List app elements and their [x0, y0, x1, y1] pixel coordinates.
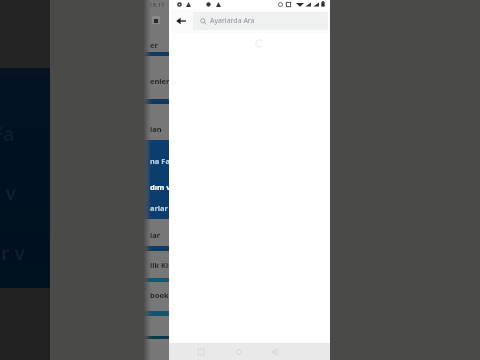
staticText: lar: [150, 230, 161, 240]
staticText: Ayarlarda Ara: [210, 16, 255, 26]
staticText: er: [150, 40, 158, 50]
staticText: dım v: [150, 182, 171, 192]
button[interactable]: Ayarlarda Ara: [193, 12, 328, 30]
button[interactable]: Back: [267, 343, 281, 360]
staticText: arlar v: [0, 240, 26, 266]
staticText: lik Kis: [150, 260, 173, 270]
staticText: na Fa: [0, 121, 15, 147]
staticText: lan: [150, 124, 162, 134]
staticText: 15:11: [149, 1, 165, 9]
staticText: arlar: [150, 203, 168, 213]
staticText: dım v: [0, 180, 17, 206]
staticText: na Fa: [150, 156, 170, 166]
button[interactable]: Home: [232, 343, 246, 360]
button[interactable]: Recents: [194, 343, 208, 360]
button[interactable]: Back: [169, 9, 193, 33]
staticText: book: [150, 290, 169, 300]
staticText: enler: [150, 76, 170, 86]
